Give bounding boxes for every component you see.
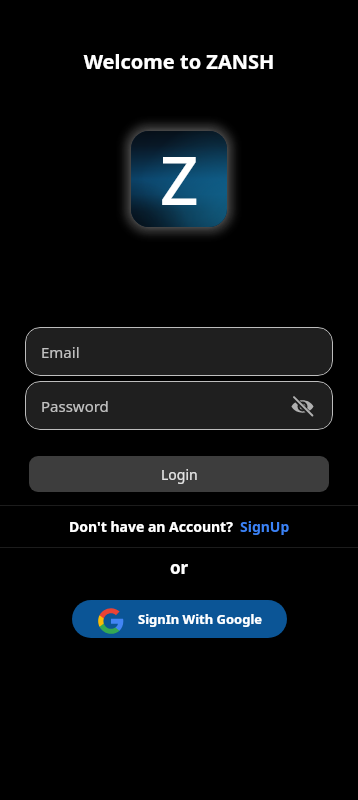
staticText: SignIn With Google [138,610,263,628]
staticText: Password [41,396,109,416]
staticText: Login [161,465,198,484]
staticText: Welcome to ZANSH [0,48,358,75]
button[interactable]: Password [25,381,333,430]
staticText: or [0,556,358,579]
staticText: Z [160,133,199,224]
button[interactable]: SignUp [240,517,290,536]
button[interactable]: Email [25,327,333,376]
button[interactable]: Login [29,456,329,492]
button[interactable]: Toggle password visibility [289,393,315,419]
staticText: Don't have an Account? [69,517,233,536]
button[interactable]: SignIn With Google [72,600,287,638]
staticText: SignUp [240,517,290,536]
staticText: Email [41,342,80,362]
